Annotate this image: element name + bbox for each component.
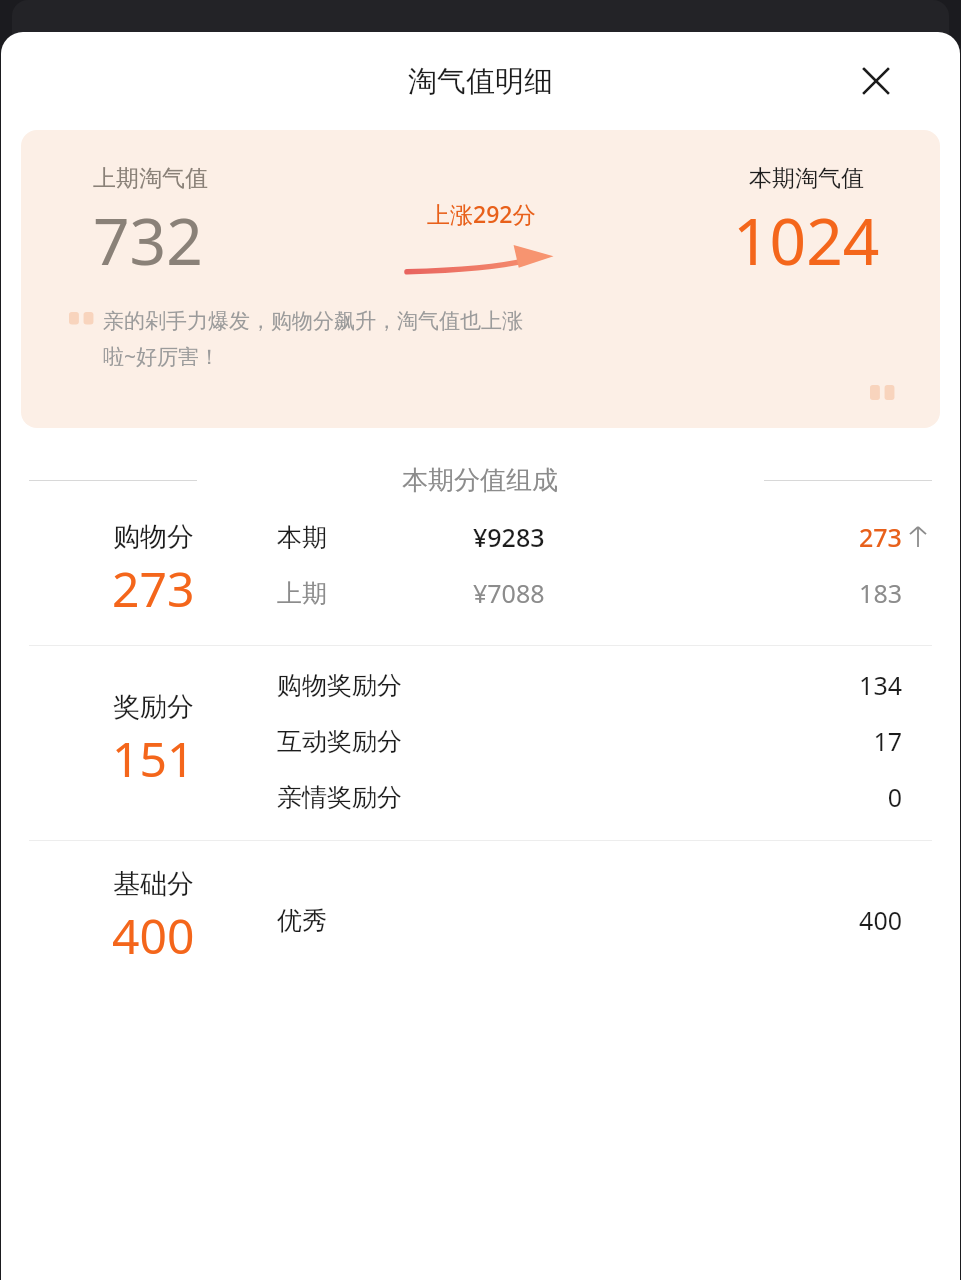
staticText: 本期淘气值: [749, 164, 864, 193]
staticText: 134: [402, 668, 902, 702]
staticText: 优秀: [277, 905, 327, 936]
staticText: 奖励分: [113, 690, 194, 724]
staticText: 淘气值明细: [408, 63, 553, 100]
staticText: 732: [93, 197, 203, 284]
staticText: 1024: [733, 197, 880, 284]
staticText: 400: [112, 903, 195, 968]
staticText: 上涨292分: [427, 198, 536, 229]
button[interactable]: 购物分: [1, 520, 960, 645]
staticText: 400: [852, 56, 921, 110]
staticText: 151: [112, 726, 195, 791]
staticText: 购物分: [113, 520, 194, 554]
staticText: 183: [669, 576, 902, 610]
staticText: 亲情奖励分: [277, 782, 402, 813]
staticText: 购物奖励分: [277, 670, 402, 701]
staticText: 本期: [277, 522, 473, 553]
staticText: 273: [859, 520, 902, 554]
staticText: 400: [327, 903, 902, 937]
staticText: ¥9283: [473, 520, 669, 554]
staticText: 上期: [277, 578, 473, 609]
staticText: ¥7088: [473, 576, 669, 610]
staticText: 互动奖励分: [277, 726, 402, 757]
button[interactable]: 奖励分: [1, 668, 960, 840]
button[interactable]: 基础分: [1, 867, 960, 968]
staticText: 273: [112, 556, 195, 621]
staticText: 上期淘气值: [93, 164, 208, 193]
staticText: 本期分值组成: [402, 464, 558, 497]
staticText: 151: [446, 56, 515, 110]
staticText: 基础分: [113, 867, 194, 901]
staticText: 0: [402, 780, 902, 814]
staticText: 17: [402, 724, 902, 758]
button[interactable]: Close: [854, 59, 898, 103]
staticText: 亲的剁手力爆发，购物分飙升，淘气值也上涨啦~好厉害！: [103, 308, 523, 370]
